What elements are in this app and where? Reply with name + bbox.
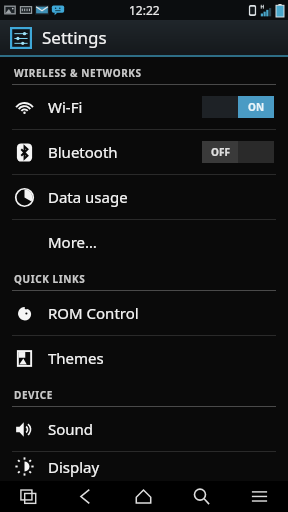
- button[interactable]: Display: [0, 452, 288, 481]
- button[interactable]: Settings: [0, 20, 288, 55]
- staticText: Display: [48, 457, 100, 477]
- button[interactable]: Search: [172, 481, 230, 512]
- button[interactable]: Bluetooth: [0, 130, 288, 174]
- staticText: DEVICE: [14, 388, 53, 402]
- staticText: Settings: [42, 26, 107, 49]
- button[interactable]: Themes: [0, 336, 288, 380]
- staticText: Data usage: [48, 187, 128, 207]
- staticText: More…: [48, 232, 97, 252]
- staticText: QUICK LINKS: [14, 272, 86, 286]
- staticText: Bluetooth: [48, 142, 118, 162]
- staticText: Wi-Fi: [48, 97, 83, 117]
- button[interactable]: Sound: [0, 407, 288, 451]
- button[interactable]: Wi-Fi: [0, 85, 288, 129]
- button[interactable]: On: [202, 96, 274, 118]
- staticText: ROM Control: [48, 303, 139, 323]
- button[interactable]: ROM Control: [0, 291, 288, 335]
- button[interactable]: More…: [0, 220, 288, 264]
- button[interactable]: Menu: [230, 481, 288, 512]
- staticText: ON: [248, 100, 265, 114]
- staticText: WIRELESS & NETWORKS: [14, 66, 142, 80]
- staticText: OFF: [211, 145, 230, 159]
- staticText: Themes: [48, 348, 104, 368]
- staticText: 12:22: [129, 2, 160, 18]
- button[interactable]: Back: [57, 481, 114, 512]
- button[interactable]: Home: [114, 481, 172, 512]
- button[interactable]: Data usage: [0, 175, 288, 219]
- staticText: Sound: [48, 419, 94, 439]
- button[interactable]: Off: [202, 141, 274, 163]
- button[interactable]: Recent apps: [0, 481, 57, 512]
